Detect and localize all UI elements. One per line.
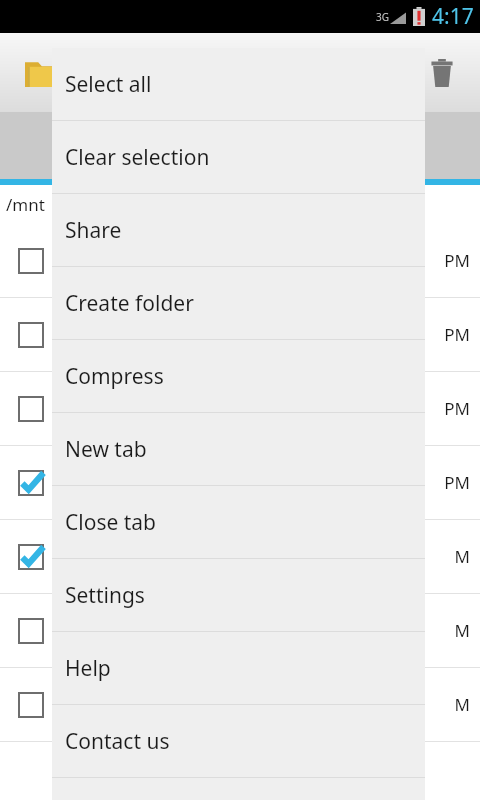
staticText: PM [444, 471, 470, 494]
button[interactable]: Create folder [52, 267, 425, 339]
button[interactable]: M [0, 520, 480, 593]
button[interactable]: Home folder [14, 47, 66, 99]
staticText: M [454, 693, 470, 716]
staticText: Compress [65, 362, 164, 391]
staticText: M [454, 619, 470, 642]
staticText: PM [444, 397, 470, 420]
staticText: Close tab [65, 508, 157, 537]
button[interactable]: Delete [416, 47, 468, 99]
staticText: Contact us [65, 727, 170, 756]
button[interactable]: PM [0, 298, 480, 371]
staticText: Share [65, 216, 122, 245]
staticText: New tab [65, 435, 147, 464]
button[interactable]: Help [52, 632, 425, 704]
button[interactable]: Compress [52, 340, 425, 412]
staticText: /mnt [6, 193, 45, 216]
button[interactable]: PM [0, 446, 480, 519]
button[interactable]: Select all [52, 48, 425, 120]
button[interactable]: Clear selection [52, 121, 425, 193]
staticText: 3G [376, 10, 389, 24]
button[interactable] [0, 112, 480, 185]
button[interactable]: Settings [52, 559, 425, 631]
staticText: PM [444, 323, 470, 346]
staticText: Help [65, 654, 111, 683]
staticText: Create folder [65, 289, 194, 318]
button[interactable]: Close tab [52, 486, 425, 558]
staticText: Select all [65, 70, 152, 99]
button[interactable]: M [0, 668, 480, 741]
button[interactable]: Contact us [52, 705, 425, 777]
staticText: M [454, 545, 470, 568]
staticText: Settings [65, 581, 145, 610]
staticText: PM [444, 249, 470, 272]
button[interactable]: PM [0, 224, 480, 297]
staticText: Clear selection [65, 143, 210, 172]
button[interactable]: PM [0, 372, 480, 445]
button[interactable]: New tab [52, 413, 425, 485]
staticText: 4:17 [432, 2, 474, 31]
button[interactable]: M [0, 594, 480, 667]
button[interactable]: Share [52, 194, 425, 266]
